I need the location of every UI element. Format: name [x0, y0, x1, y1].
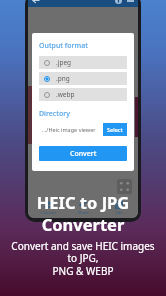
button[interactable]: Edit [103, 200, 135, 216]
staticText: Directory [39, 109, 70, 119]
button[interactable]: Convert [39, 146, 127, 161]
button[interactable]: .png [39, 72, 127, 85]
button[interactable]: Convert [32, 200, 64, 216]
button[interactable]: Select [103, 123, 127, 136]
staticText: .jpeg [56, 58, 72, 67]
staticText: .webp [56, 90, 75, 99]
button[interactable]: Share [67, 200, 99, 216]
button[interactable]: Grid view [117, 179, 132, 194]
staticText: HEIC to JPG Converter [6, 191, 160, 235]
staticText: …/Heic image viewer [42, 126, 96, 133]
button[interactable]: .webp [39, 88, 127, 101]
staticText: Select [107, 126, 123, 133]
button[interactable]: Print [127, 0, 134, 4]
button[interactable]: …/Heic image viewer [39, 123, 103, 136]
staticText: Convert [41, 210, 56, 215]
staticText: Edit [115, 210, 123, 215]
button[interactable]: Info [115, 0, 122, 4]
staticText: Share [78, 210, 89, 215]
staticText: Convert and save HEIC images to JPG, PNG… [6, 239, 160, 278]
staticText: Output format [39, 41, 88, 51]
staticText: Convert [70, 149, 97, 159]
button[interactable]: .jpeg [39, 56, 127, 69]
button[interactable]: Back [32, 0, 39, 4]
staticText: .png [56, 74, 70, 83]
